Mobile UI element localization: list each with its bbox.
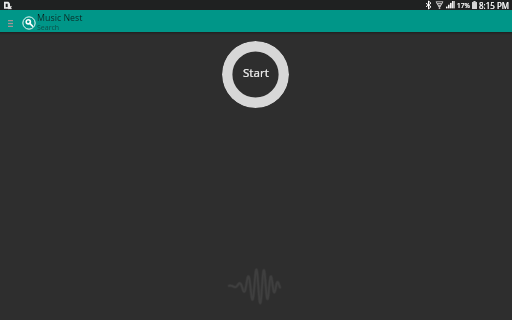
staticText: 17% [457, 1, 470, 10]
button[interactable]: Start [222, 41, 289, 108]
staticText: Start [243, 65, 269, 81]
button[interactable]: Music Nest [37, 10, 97, 32]
button[interactable]: Menu [1, 14, 19, 32]
staticText: 8:15 PM [479, 0, 510, 10]
staticText: Search [37, 23, 60, 33]
staticText: Music Nest [37, 12, 83, 24]
button[interactable]: Search [20, 14, 37, 31]
